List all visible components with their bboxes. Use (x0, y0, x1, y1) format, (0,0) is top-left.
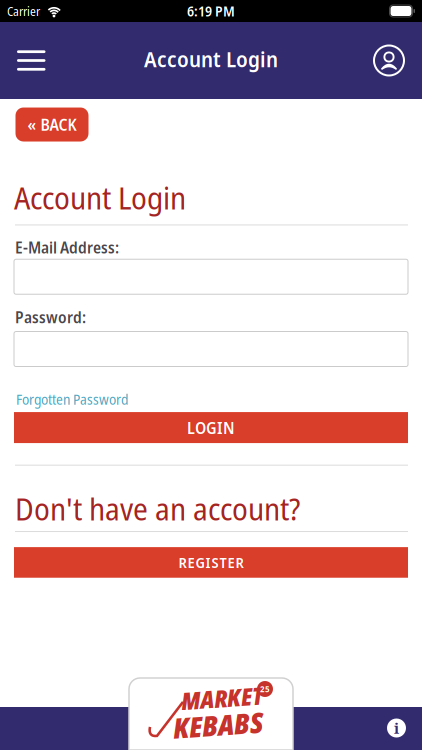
button[interactable]: Account (374, 45, 422, 75)
button[interactable]: « BACK (15, 107, 88, 141)
staticText: LOGIN (187, 416, 235, 439)
staticText: MARKET (182, 682, 264, 715)
staticText: R E G I S T E R (178, 552, 243, 572)
staticText: Don't have an account? (15, 488, 300, 530)
button[interactable]: LOGIN (14, 412, 408, 443)
staticText: Account Login (14, 176, 186, 218)
button[interactable]: Forgotten Password (16, 389, 128, 409)
button[interactable]: Menu (0, 50, 45, 71)
staticText: Account Login (144, 44, 278, 73)
button[interactable]: E-Mail Address (0, 259, 422, 294)
button[interactable]: Market Kebabs (129, 678, 293, 750)
staticText: KEBABS (172, 706, 262, 744)
staticText: Password: (15, 306, 86, 328)
staticText: « BACK (27, 114, 76, 135)
staticText: 25 (260, 683, 270, 695)
staticText: i (394, 718, 399, 738)
staticText: 6:19 PM (187, 1, 235, 21)
staticText: Carrier (7, 2, 40, 20)
staticText: E-Mail Address: (15, 236, 119, 258)
button[interactable]: Info (387, 718, 422, 750)
button[interactable]: R E G I S T E R (14, 547, 408, 578)
staticText: Forgotten Password (16, 389, 128, 409)
